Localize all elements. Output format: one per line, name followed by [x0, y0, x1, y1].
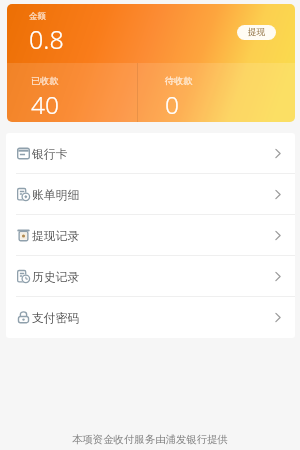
button[interactable]: 提现: [237, 25, 276, 40]
staticText: 银行卡: [32, 147, 68, 162]
button[interactable]: 提现记录: [6, 215, 295, 256]
other: Open 历史记录: [275, 271, 281, 282]
button[interactable]: 支付密码: [6, 297, 295, 338]
staticText: 已收款: [31, 75, 59, 87]
staticText: 金额: [29, 11, 46, 22]
staticText: 提现记录: [32, 229, 80, 244]
staticText: 本项资金收付服务由浦发银行提供: [72, 433, 228, 446]
other: Open 提现记录: [275, 230, 281, 241]
staticText: 历史记录: [32, 270, 80, 285]
staticText: 40: [31, 88, 59, 121]
staticText: 0: [165, 88, 179, 121]
staticText: 支付密码: [32, 311, 80, 326]
staticText: 账单明细: [32, 188, 80, 203]
button[interactable]: 账单明细: [6, 174, 295, 215]
staticText: 提现: [248, 27, 265, 38]
button[interactable]: 历史记录: [6, 256, 295, 297]
staticText: 待收款: [165, 75, 193, 87]
staticText: 0.8: [29, 22, 64, 56]
other: Open 支付密码: [275, 312, 281, 323]
button[interactable]: 银行卡: [6, 133, 295, 174]
other: Open 账单明细: [275, 189, 281, 200]
other: Open 银行卡: [275, 148, 281, 159]
